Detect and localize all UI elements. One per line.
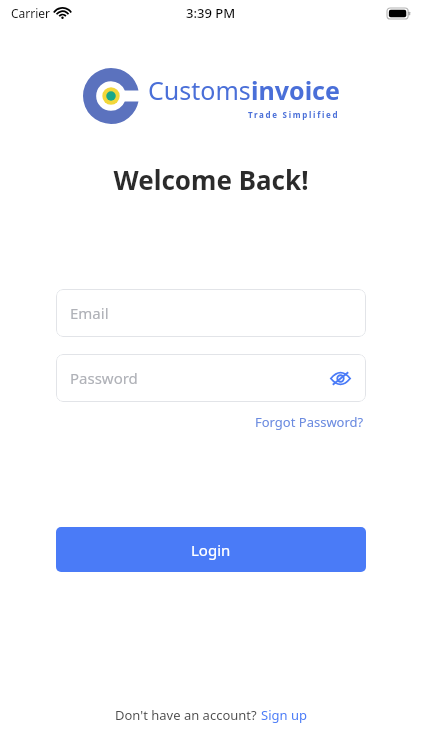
button[interactable]: Login	[56, 527, 366, 572]
button[interactable]: Show password	[326, 364, 354, 392]
staticText: Sign up	[261, 706, 307, 724]
staticText: Forgot Password?	[255, 413, 364, 431]
button[interactable]: Forgot Password?	[253, 410, 366, 434]
staticText: Welcome Back!	[0, 162, 422, 197]
staticText: Password	[70, 368, 326, 388]
staticText: Carrier	[11, 5, 51, 21]
staticText: Trade Simplified	[248, 109, 340, 120]
staticText: Login	[191, 540, 231, 560]
staticText: Don't have an account?	[115, 706, 261, 724]
staticText: 3:39 PM	[186, 4, 236, 22]
button[interactable]: Password	[56, 354, 366, 402]
staticText: Email	[70, 303, 354, 323]
staticText: Customs	[148, 73, 251, 107]
button[interactable]: Email	[56, 289, 366, 337]
staticText: invoice	[251, 73, 340, 107]
button[interactable]: Sign up	[261, 706, 307, 724]
